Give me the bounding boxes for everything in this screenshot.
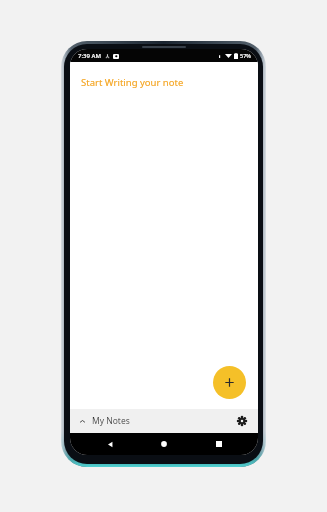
staticText: My Notes xyxy=(92,415,130,427)
button[interactable]: Home xyxy=(149,433,179,455)
button[interactable]: Recent apps xyxy=(204,433,234,455)
staticText: 57% xyxy=(240,52,251,59)
button[interactable]: Back xyxy=(95,433,125,455)
button[interactable]: My Notes xyxy=(70,409,258,433)
staticText: 7:39 AM xyxy=(78,52,101,60)
button[interactable]: Settings xyxy=(235,414,249,428)
button[interactable]: Start Writing your note xyxy=(70,62,258,409)
button[interactable]: Add note xyxy=(213,366,246,399)
staticText: Start Writing your note xyxy=(81,76,184,89)
